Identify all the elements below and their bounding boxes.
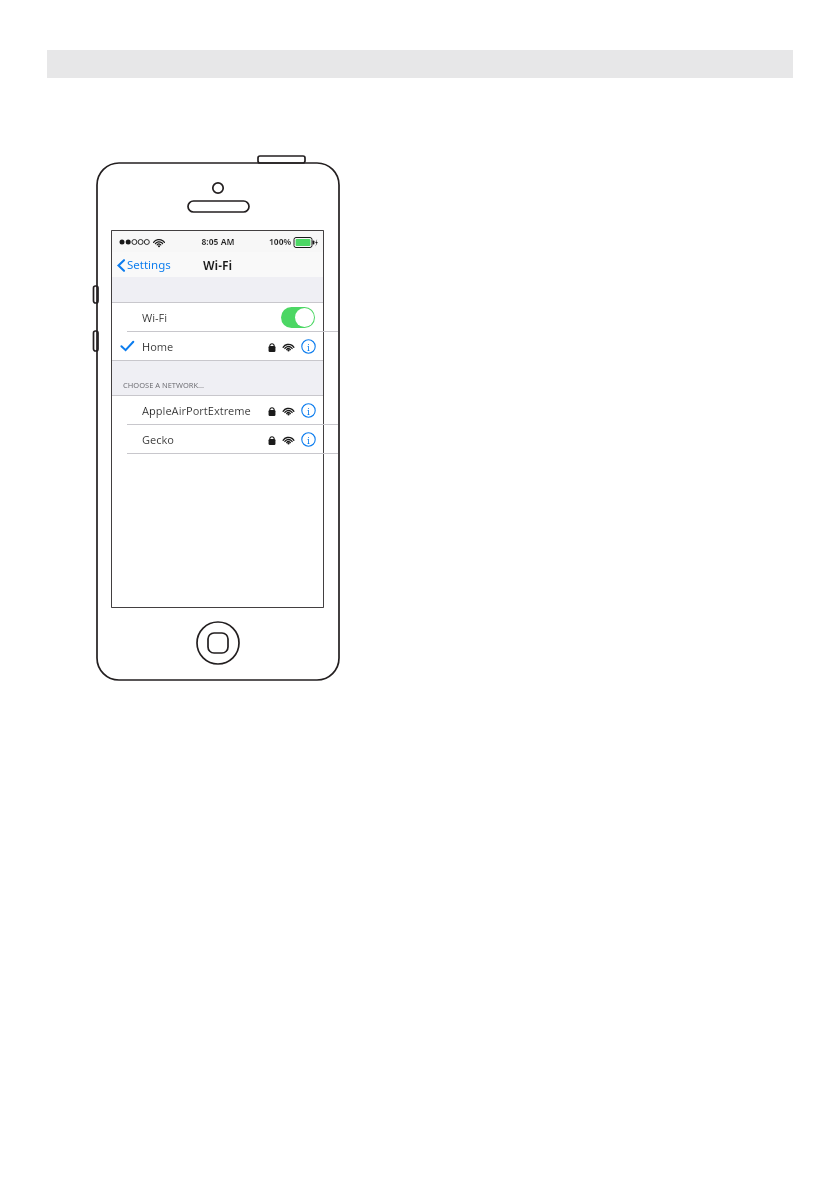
button[interactable]: Wi-Fi on — [281, 307, 315, 328]
other: Secured network — [268, 405, 276, 417]
staticText: Wi-Fi — [203, 257, 233, 273]
staticText: AppleAirPortExtreme — [142, 403, 251, 418]
staticText: 100% — [269, 236, 292, 248]
button[interactable]: Home — [112, 332, 323, 360]
button[interactable]: AppleAirPortExtreme — [112, 396, 323, 424]
other: Signal strength — [282, 405, 295, 416]
button[interactable]: Gecko — [112, 425, 323, 453]
button[interactable]: Wi-Fi — [112, 303, 323, 331]
button[interactable]: More info — [301, 339, 316, 354]
button[interactable]: More info — [301, 432, 316, 447]
staticText: 8:05 AM — [201, 236, 235, 248]
staticText: i — [307, 434, 310, 446]
other: Signal strength — [282, 434, 295, 445]
button[interactable]: Settings — [112, 254, 177, 276]
staticText: Settings — [127, 257, 171, 273]
button[interactable]: More info — [301, 403, 316, 418]
other: Secured network — [268, 434, 276, 446]
staticText: Wi-Fi — [142, 310, 168, 325]
other: Signal strength — [282, 341, 295, 352]
staticText: i — [307, 405, 310, 417]
other: Secured network — [268, 341, 276, 353]
staticText: Gecko — [142, 432, 175, 447]
staticText: CHOOSE A NETWORK... — [123, 380, 205, 390]
staticText: Home — [142, 339, 174, 354]
staticText: i — [307, 341, 310, 353]
